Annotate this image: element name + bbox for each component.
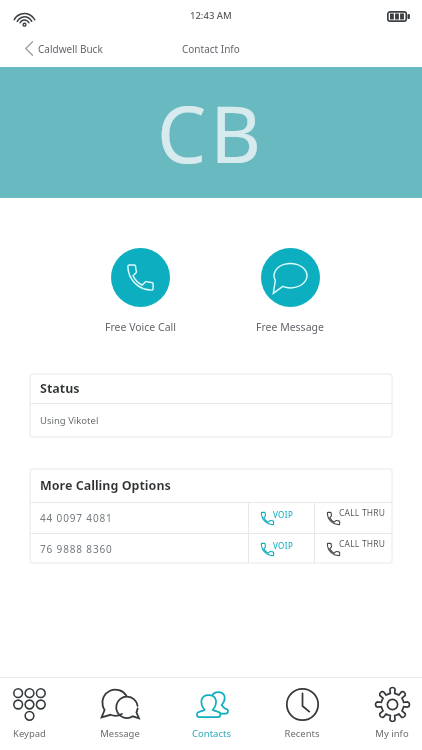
staticText: CALL THRU — [339, 538, 386, 550]
staticText: More Calling Options — [40, 477, 171, 494]
staticText: CALL THRU — [339, 507, 386, 519]
staticText: Free Voice Call — [105, 320, 176, 334]
staticText: 12:43 AM — [190, 9, 232, 22]
staticText: Keypad — [13, 727, 46, 740]
button[interactable]: Caldwell Buck — [22, 37, 106, 60]
button[interactable]: CALL THRU — [315, 503, 392, 533]
button[interactable]: My info — [354, 678, 422, 750]
staticText: VOIP — [273, 509, 294, 520]
button[interactable]: Message — [82, 678, 158, 750]
staticText: Free Message — [256, 320, 324, 334]
staticText: Contacts — [192, 727, 231, 740]
staticText: 76 9888 8360 — [40, 542, 248, 556]
button[interactable]: VOIP — [249, 534, 314, 563]
staticText: My info — [375, 727, 409, 740]
staticText: 44 0097 4081 — [40, 511, 248, 525]
staticText: VOIP — [273, 540, 294, 551]
button[interactable]: Contacts — [173, 678, 249, 750]
button[interactable]: Recents — [264, 678, 340, 750]
staticText: Caldwell Buck — [38, 42, 103, 56]
button[interactable]: VOIP — [249, 503, 314, 533]
staticText: Recents — [284, 727, 320, 740]
other: Battery — [387, 11, 410, 22]
staticText: Contact Info — [182, 42, 240, 56]
button[interactable]: Free Voice Call — [65, 248, 215, 337]
staticText: Status — [40, 380, 80, 397]
staticText: Message — [100, 727, 140, 740]
button[interactable]: CALL THRU — [315, 534, 392, 563]
button[interactable]: Free Message — [215, 248, 365, 337]
button[interactable]: Keypad — [0, 678, 67, 750]
staticText: CB — [157, 80, 265, 186]
staticText: Using Vikotel — [40, 414, 99, 427]
